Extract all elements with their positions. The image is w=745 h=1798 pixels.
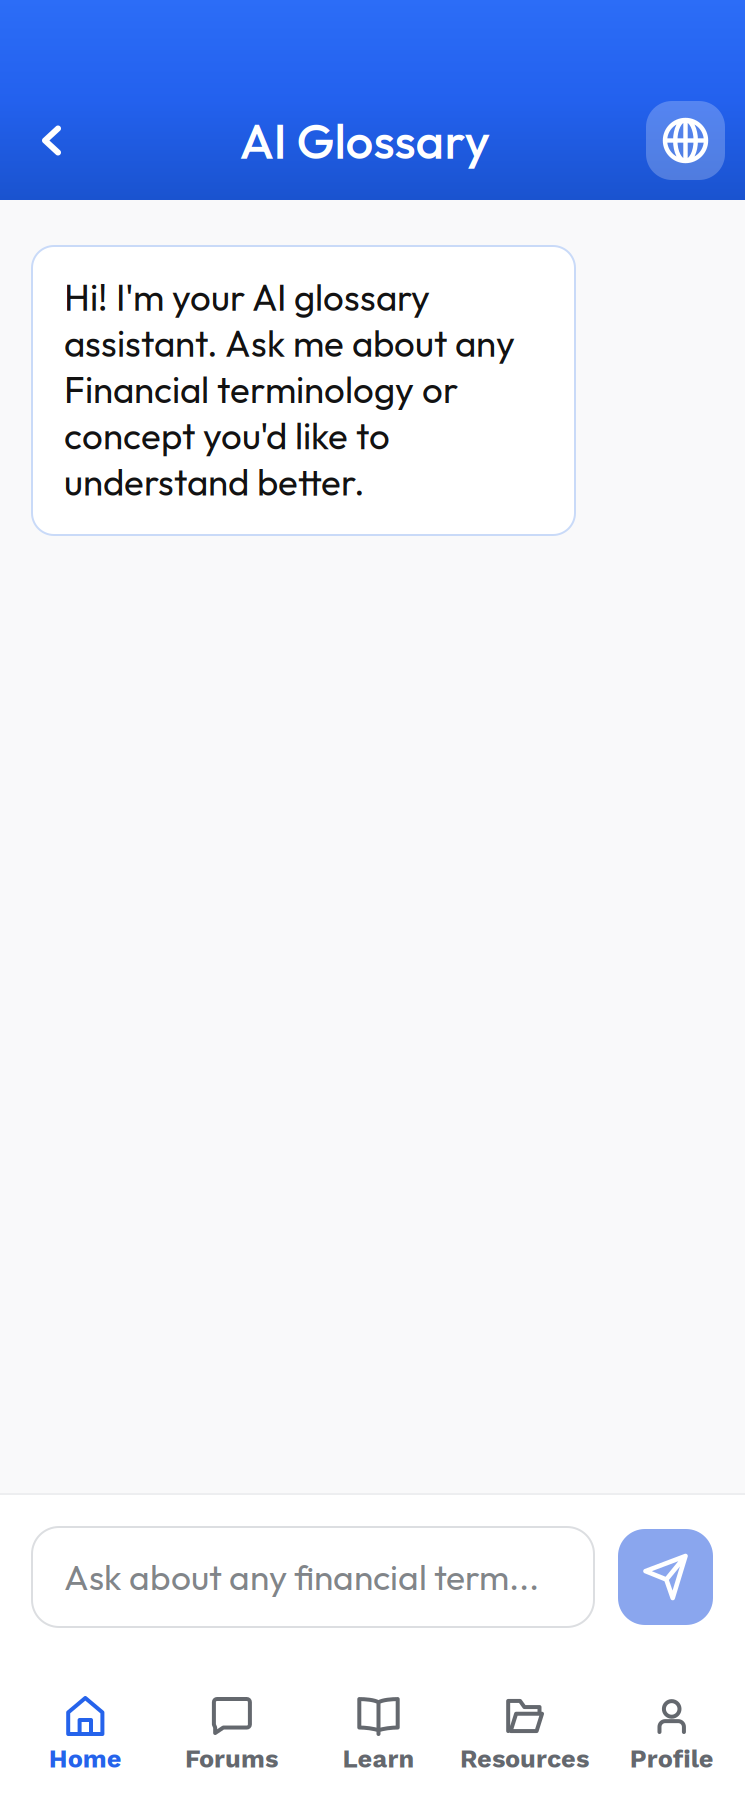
staticText: AI Glossary (239, 109, 490, 172)
staticText: Forums (185, 1744, 279, 1774)
staticText: Ask about any financial term... (64, 1555, 539, 1599)
button[interactable]: Learn (305, 1657, 452, 1798)
button[interactable]: Forums (159, 1657, 305, 1798)
button[interactable]: Send (618, 1529, 713, 1625)
staticText: Profile (630, 1744, 714, 1774)
staticText: Home (49, 1744, 122, 1774)
button[interactable]: Resources (452, 1657, 598, 1798)
staticText: Resources (460, 1744, 590, 1774)
button[interactable]: Home (12, 1657, 159, 1798)
button[interactable]: Profile (598, 1657, 745, 1798)
button[interactable]: Change language (646, 101, 745, 180)
button[interactable]: Back (0, 101, 84, 179)
staticText: Learn (342, 1744, 414, 1774)
staticText: Hi! I'm your AI glossary assistant. Ask … (64, 274, 515, 505)
